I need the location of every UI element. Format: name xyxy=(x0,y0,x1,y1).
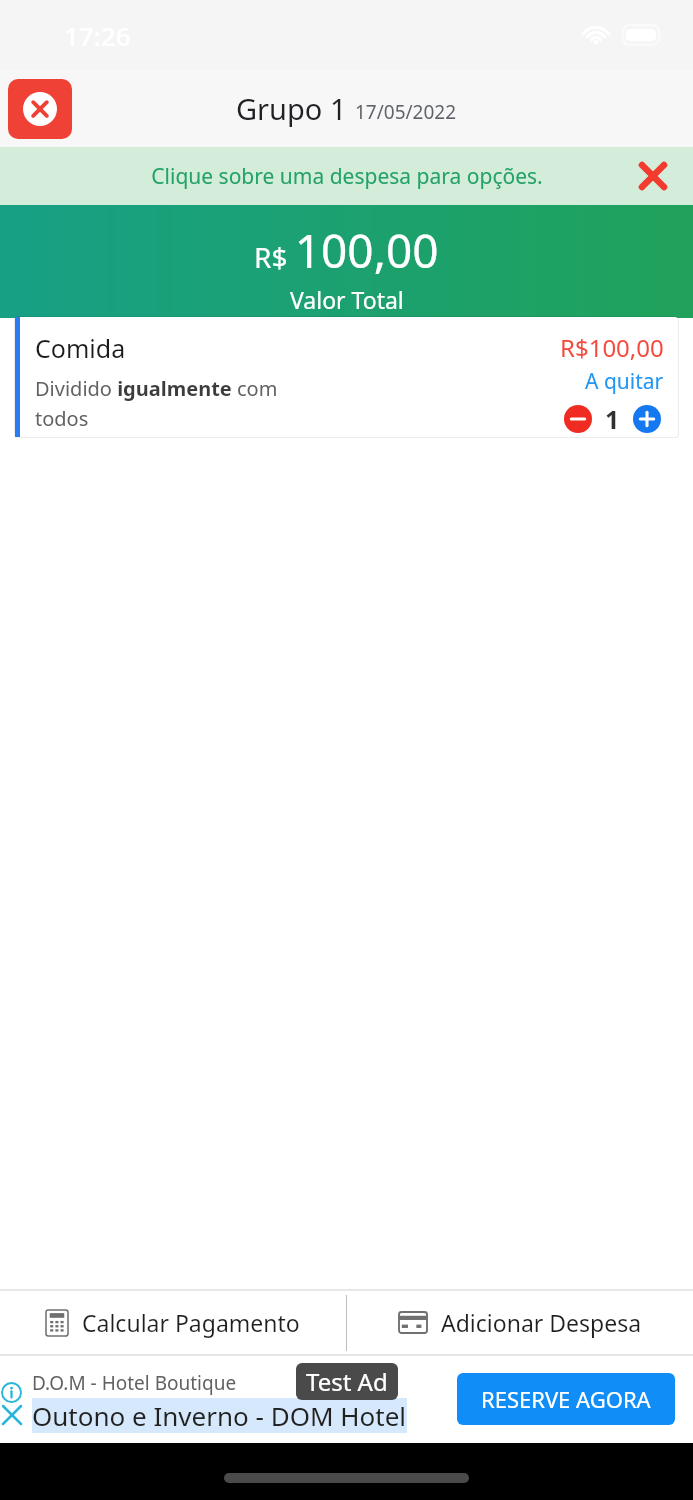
staticText: 17/05/2022 xyxy=(355,99,457,125)
staticText: R$100,00 xyxy=(560,331,664,364)
staticText: Grupo 1 xyxy=(236,89,347,128)
staticText: R$ 100,00 xyxy=(254,219,439,282)
button[interactable]: Comida xyxy=(15,317,678,437)
staticText: Test Ad xyxy=(306,1365,388,1398)
staticText: Calcular Pagamento xyxy=(82,1307,300,1338)
button[interactable]: D.O.M - Hotel Boutique xyxy=(0,1355,693,1443)
button[interactable]: Calcular Pagamento xyxy=(0,1290,346,1355)
button[interactable]: Fechar aviso xyxy=(633,156,673,196)
button[interactable]: Adicionar Despesa xyxy=(347,1290,693,1355)
staticText: 17:26 xyxy=(64,18,131,53)
staticText: Clique sobre uma despesa para opções. xyxy=(151,162,543,191)
staticText: RESERVE AGORA xyxy=(481,1384,651,1414)
other: Fechar anúncio xyxy=(3,1406,21,1424)
staticText: Comida xyxy=(35,331,126,365)
button[interactable]: Remover xyxy=(561,402,595,436)
staticText: Adicionar Despesa xyxy=(441,1307,642,1338)
staticText: Outono e Inverno - DOM Hotel xyxy=(32,1398,407,1433)
staticText: Dividido igualmente com todos xyxy=(35,375,285,432)
staticText: 1 xyxy=(605,402,620,436)
staticText: D.O.M - Hotel Boutique xyxy=(32,1370,237,1396)
button[interactable]: Adicionar xyxy=(630,402,664,436)
button[interactable]: A quitar xyxy=(585,367,664,396)
staticText: Valor Total xyxy=(290,284,404,315)
button[interactable]: Fechar xyxy=(8,79,72,139)
button[interactable]: RESERVE AGORA xyxy=(457,1373,675,1425)
